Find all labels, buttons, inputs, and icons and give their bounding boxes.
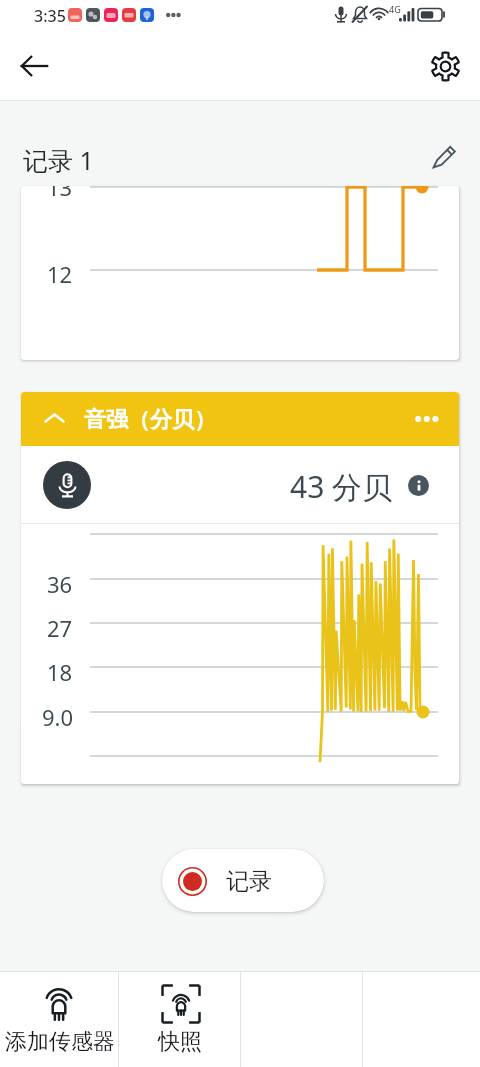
staticText: 12 — [47, 259, 73, 289]
button[interactable]: Sensor info — [408, 475, 429, 496]
staticText: 添加传感器 — [5, 1028, 115, 1056]
button[interactable]: More options — [405, 400, 449, 438]
staticText: 记录 1 — [23, 143, 94, 177]
staticText: 36 — [47, 569, 73, 599]
button[interactable]: Back — [10, 42, 58, 90]
staticText: 音强（分贝） — [84, 406, 216, 434]
staticText: 9.0 — [42, 702, 74, 732]
button[interactable]: 添加传感器 — [0, 972, 118, 1067]
staticText: 记录 — [226, 867, 272, 896]
button[interactable]: Collapse sound sensor card — [21, 392, 459, 446]
button[interactable]: Settings — [421, 42, 469, 90]
button[interactable]: 快照 — [119, 972, 241, 1067]
staticText: 43 分贝 — [290, 466, 393, 507]
staticText: 13 — [47, 186, 73, 202]
button[interactable]: 记录 — [162, 849, 324, 912]
staticText: 18 — [47, 657, 73, 687]
button[interactable]: Sound sensor — [43, 461, 91, 509]
staticText: 3:35 — [34, 5, 66, 27]
staticText: 4G — [389, 3, 401, 15]
button[interactable]: Edit name — [419, 130, 471, 182]
staticText: 27 — [47, 613, 73, 643]
staticText: 快照 — [158, 1028, 202, 1056]
button[interactable]: 13 — [21, 186, 459, 360]
